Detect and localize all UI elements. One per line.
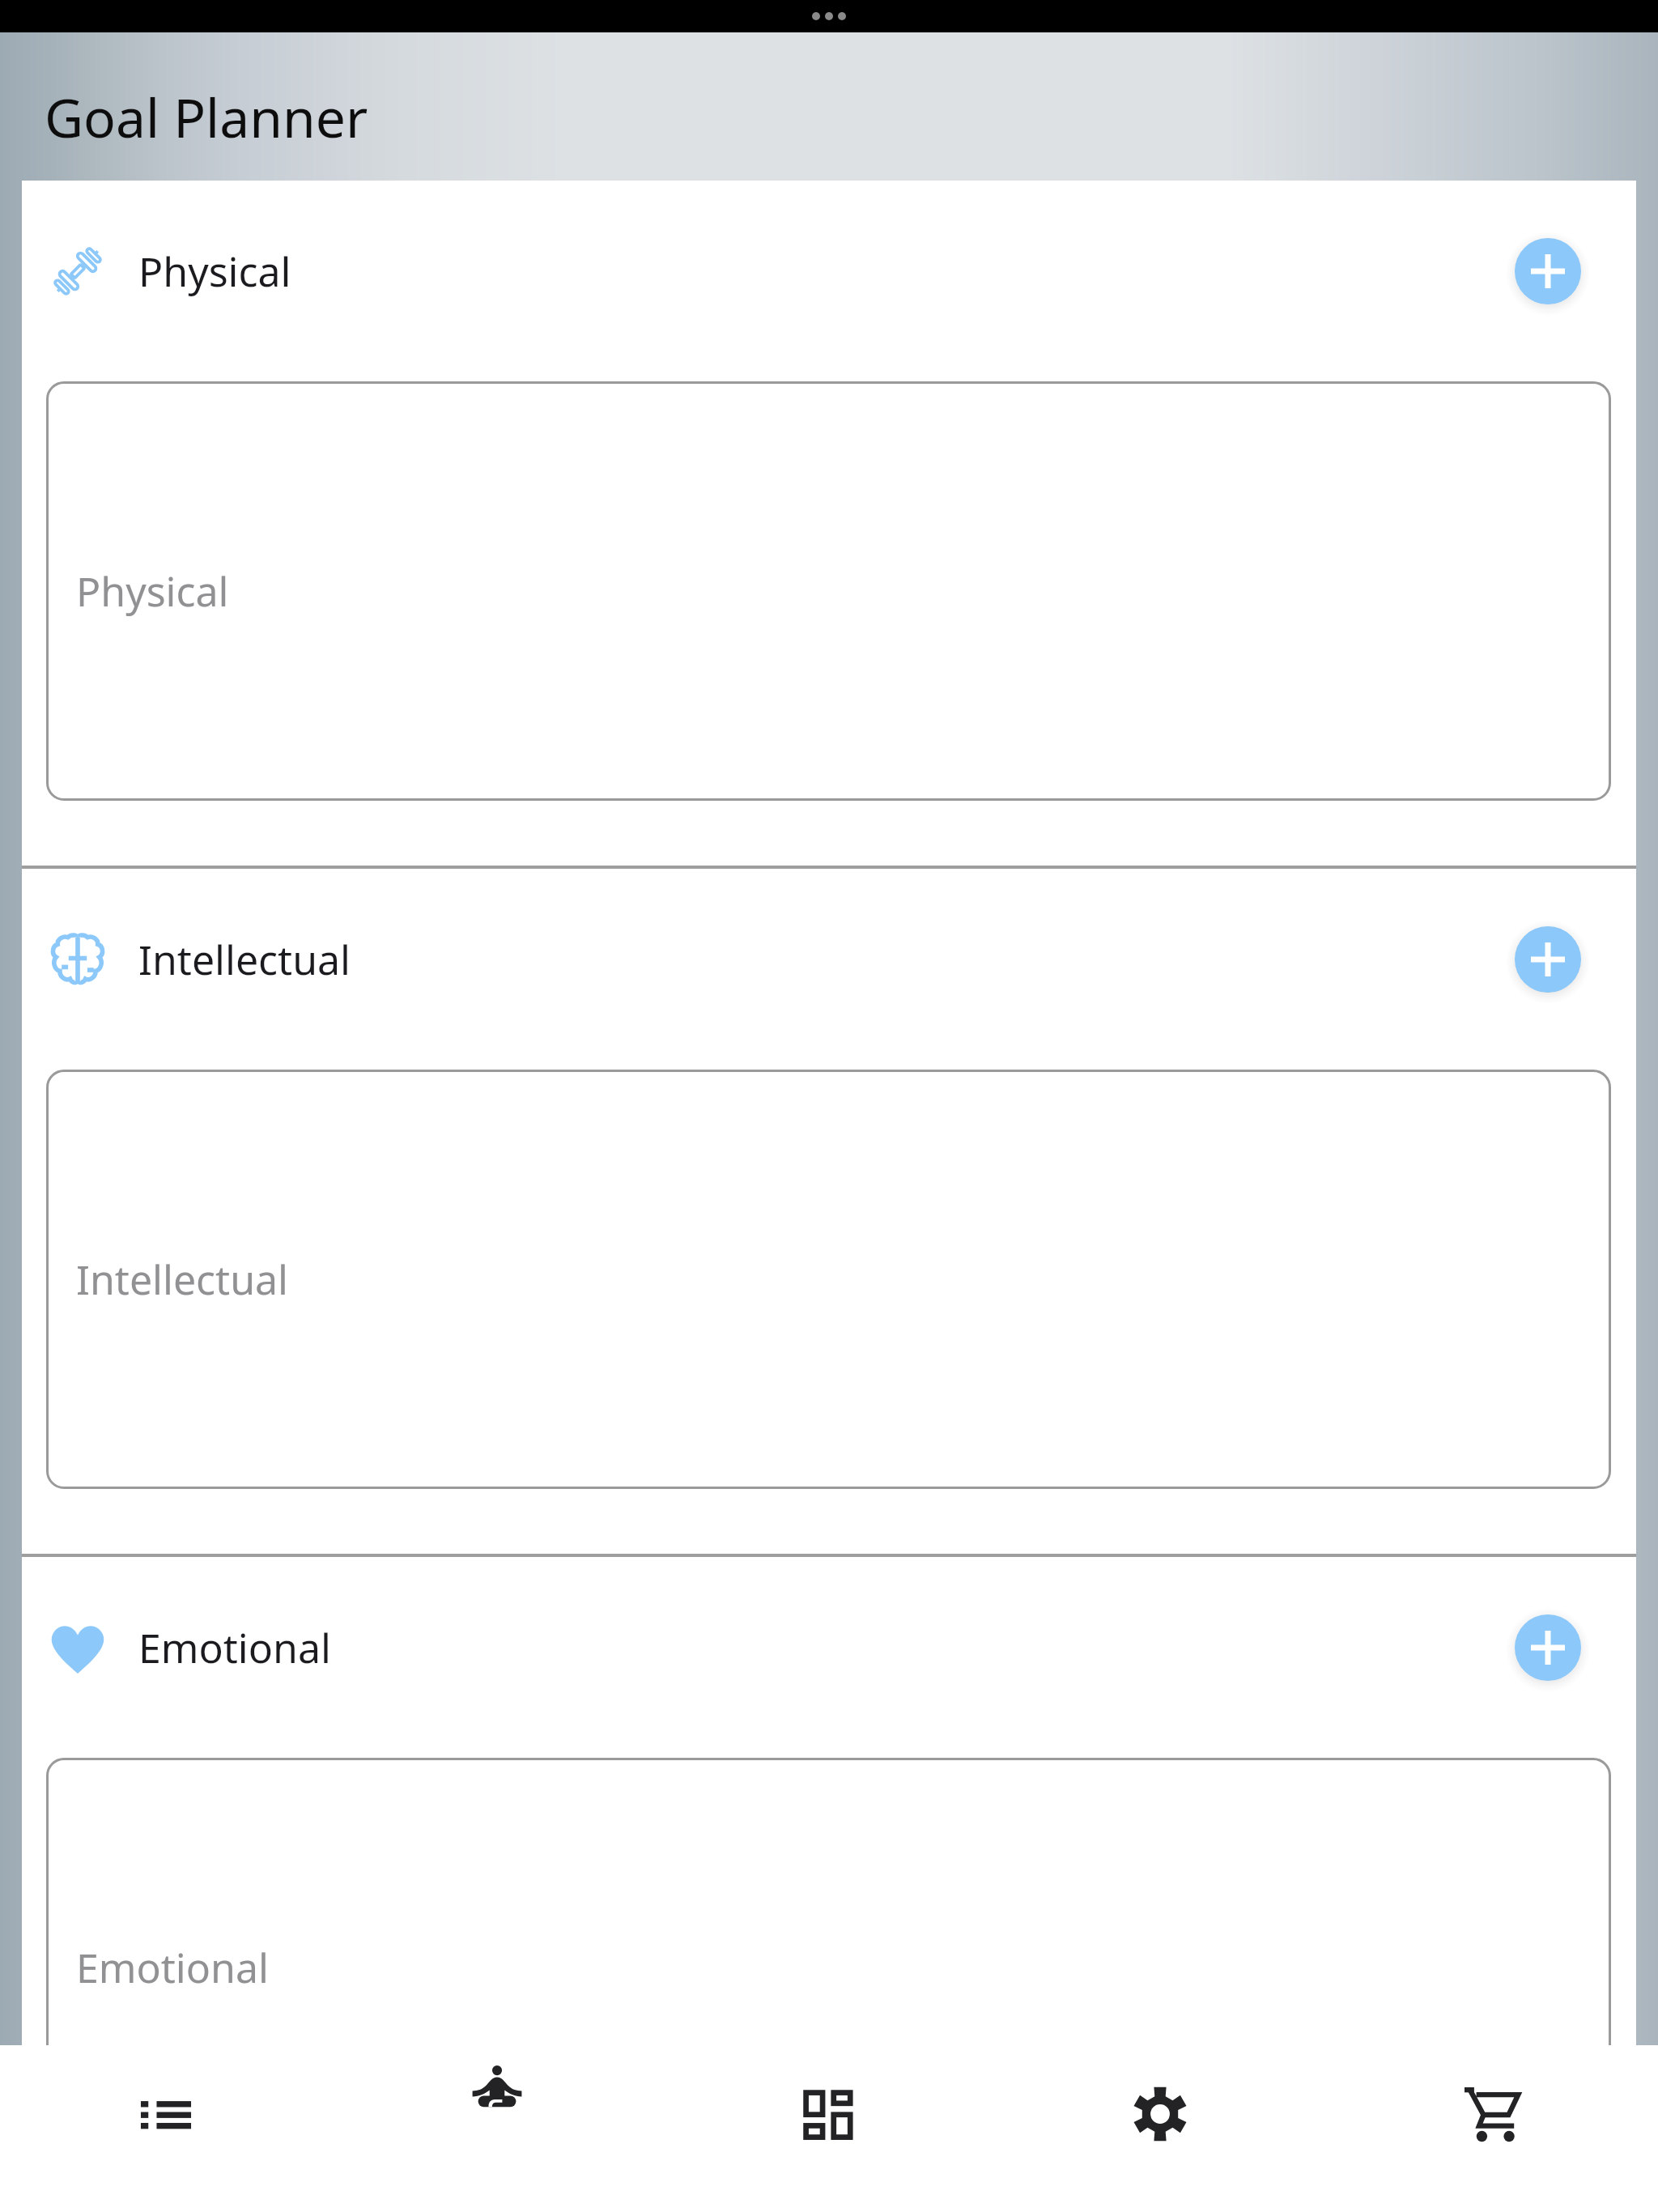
staticText: Physical: [138, 244, 291, 299]
button[interactable]: List: [0, 2045, 331, 2212]
button[interactable]: Add Emotional goal: [1506, 1606, 1590, 1690]
button[interactable]: Emotional: [46, 1758, 1611, 2045]
staticText: Physical: [76, 564, 229, 619]
button[interactable]: Settings: [994, 2045, 1326, 2212]
button[interactable]: Physical: [46, 381, 1611, 801]
button[interactable]: Cart: [1326, 2045, 1658, 2212]
staticText: Emotional: [76, 1940, 269, 1995]
staticText: Goal Planner: [45, 80, 368, 153]
staticText: Emotional: [138, 1620, 331, 1675]
button[interactable]: Dashboard: [662, 2045, 994, 2212]
button[interactable]: Add Physical goal: [1506, 229, 1590, 313]
button[interactable]: Intellectual: [46, 1070, 1611, 1489]
button[interactable]: Add Intellectual goal: [1506, 917, 1590, 1002]
staticText: Intellectual: [138, 932, 351, 987]
staticText: Intellectual: [76, 1252, 288, 1307]
button[interactable]: Meditate: [331, 2045, 662, 2212]
